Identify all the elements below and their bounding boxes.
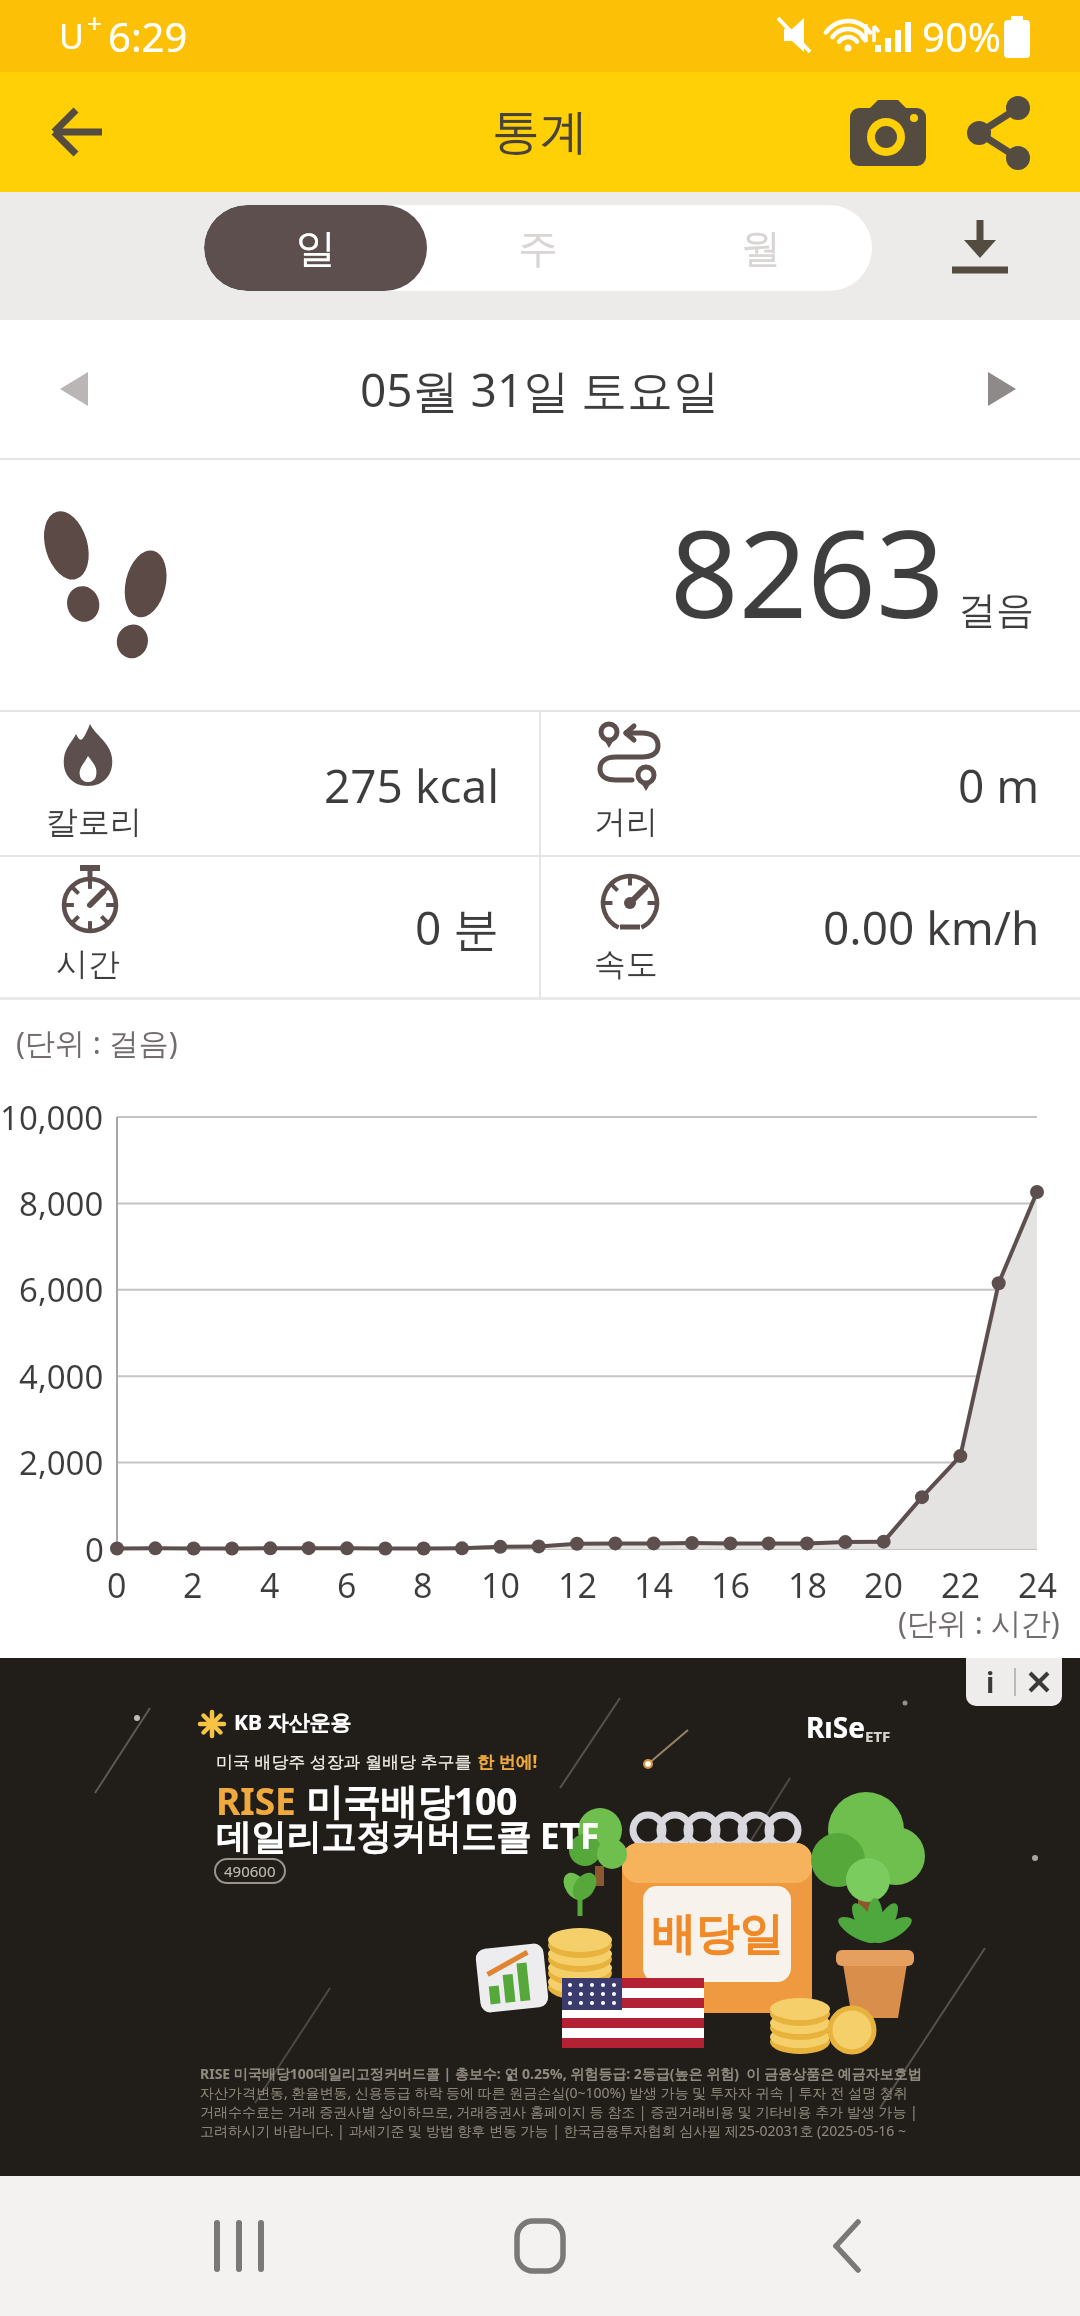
staticText: 16 bbox=[711, 1562, 750, 1606]
staticText: RISE 미국배당100데일리고정커버드콜 | 총보수: 연 0.25%, 위험… bbox=[200, 2064, 924, 2084]
staticText: 490600 bbox=[224, 1861, 276, 1881]
staticText: 속도 bbox=[594, 944, 658, 984]
staticText: 6 bbox=[337, 1562, 357, 1606]
staticText: (단위 : 걸음) bbox=[16, 1022, 178, 1063]
staticText: 거래수수료는 거래 증권사별 상이하므로, 거래증권사 홈페이지 등 참조 | … bbox=[200, 2102, 924, 2122]
staticText: 2,000 bbox=[19, 1440, 104, 1484]
staticText: 10,000 bbox=[0, 1095, 104, 1139]
button[interactable]: i bbox=[966, 1658, 1014, 1706]
staticText: 0 bbox=[107, 1562, 127, 1606]
staticText: i bbox=[986, 1663, 995, 1701]
staticText: ETF bbox=[865, 1726, 891, 1746]
staticText: 거리 bbox=[594, 802, 658, 842]
staticText: (단위 : 시간) bbox=[898, 1602, 1060, 1642]
staticText: RISE bbox=[216, 1775, 306, 1825]
button[interactable]: 주 bbox=[427, 205, 649, 291]
staticText: 4,000 bbox=[19, 1354, 104, 1398]
staticText: 통계 bbox=[492, 102, 588, 162]
staticText: 주 bbox=[518, 223, 558, 273]
staticText: 월 bbox=[741, 223, 781, 273]
button[interactable] bbox=[1016, 1658, 1062, 1706]
staticText: 20 bbox=[864, 1562, 903, 1606]
staticText: 18 bbox=[788, 1562, 827, 1606]
staticText: 12 bbox=[558, 1562, 597, 1606]
staticText: + bbox=[87, 5, 102, 40]
staticText: 8,000 bbox=[19, 1181, 104, 1225]
staticText: 24 bbox=[1018, 1562, 1057, 1606]
staticText: 미국배당100 bbox=[306, 1775, 518, 1826]
staticText: 22 bbox=[941, 1562, 980, 1606]
button[interactable]: 배당일 bbox=[0, 1658, 1080, 2176]
staticText: 미국 배당주 성장과 월배당 추구를 bbox=[216, 1750, 477, 1773]
button[interactable]: 일 bbox=[204, 205, 427, 291]
staticText: 시간 bbox=[56, 944, 120, 984]
staticText: 2 bbox=[183, 1562, 203, 1606]
button[interactable] bbox=[510, 2216, 570, 2276]
staticText: 6,000 bbox=[19, 1267, 104, 1311]
staticText: 고려하시기 바랍니다. | 과세기준 및 방법 향후 변동 가능 | 한국금융투… bbox=[200, 2121, 924, 2141]
staticText: 칼로리 bbox=[46, 802, 142, 842]
staticText: 14 bbox=[634, 1562, 673, 1606]
staticText: 0 bbox=[85, 1527, 104, 1571]
button[interactable] bbox=[966, 354, 1036, 424]
staticText: 0 분 bbox=[415, 896, 500, 959]
staticText: 자산가격변동, 환율변동, 신용등급 하락 등에 따른 원금손실(0~100%)… bbox=[200, 2083, 924, 2103]
staticText: 90% bbox=[922, 9, 1001, 63]
staticText: 걸음 bbox=[958, 586, 1034, 634]
staticText: KB 자산운용 bbox=[234, 1708, 352, 1737]
staticText: 10 bbox=[481, 1562, 520, 1606]
staticText: 배당일 bbox=[651, 1907, 783, 1962]
button[interactable] bbox=[200, 2218, 280, 2274]
button[interactable] bbox=[942, 214, 1018, 280]
button[interactable]: 월 bbox=[649, 205, 872, 291]
staticText: U bbox=[59, 13, 84, 59]
button[interactable] bbox=[818, 2216, 878, 2276]
staticText: 0 m bbox=[958, 754, 1040, 817]
staticText: 4 bbox=[260, 1562, 280, 1606]
button[interactable] bbox=[40, 354, 110, 424]
staticText: 6:29 bbox=[108, 9, 188, 63]
staticText: 8263 bbox=[670, 490, 945, 650]
staticText: 275 kcal bbox=[324, 754, 500, 817]
staticText: 일 bbox=[296, 223, 336, 273]
staticText: 한 번에! bbox=[477, 1750, 538, 1773]
staticText: 8 bbox=[413, 1562, 433, 1606]
button[interactable] bbox=[30, 92, 120, 172]
staticText: RıSe bbox=[806, 1708, 865, 1746]
staticText: 데일리고정커버드콜 ETF bbox=[216, 1812, 600, 1856]
button[interactable] bbox=[952, 92, 1048, 172]
staticText: 05월 31일 토요일 bbox=[360, 358, 720, 421]
staticText: 0.00 km/h bbox=[823, 896, 1040, 959]
button[interactable] bbox=[840, 92, 940, 172]
